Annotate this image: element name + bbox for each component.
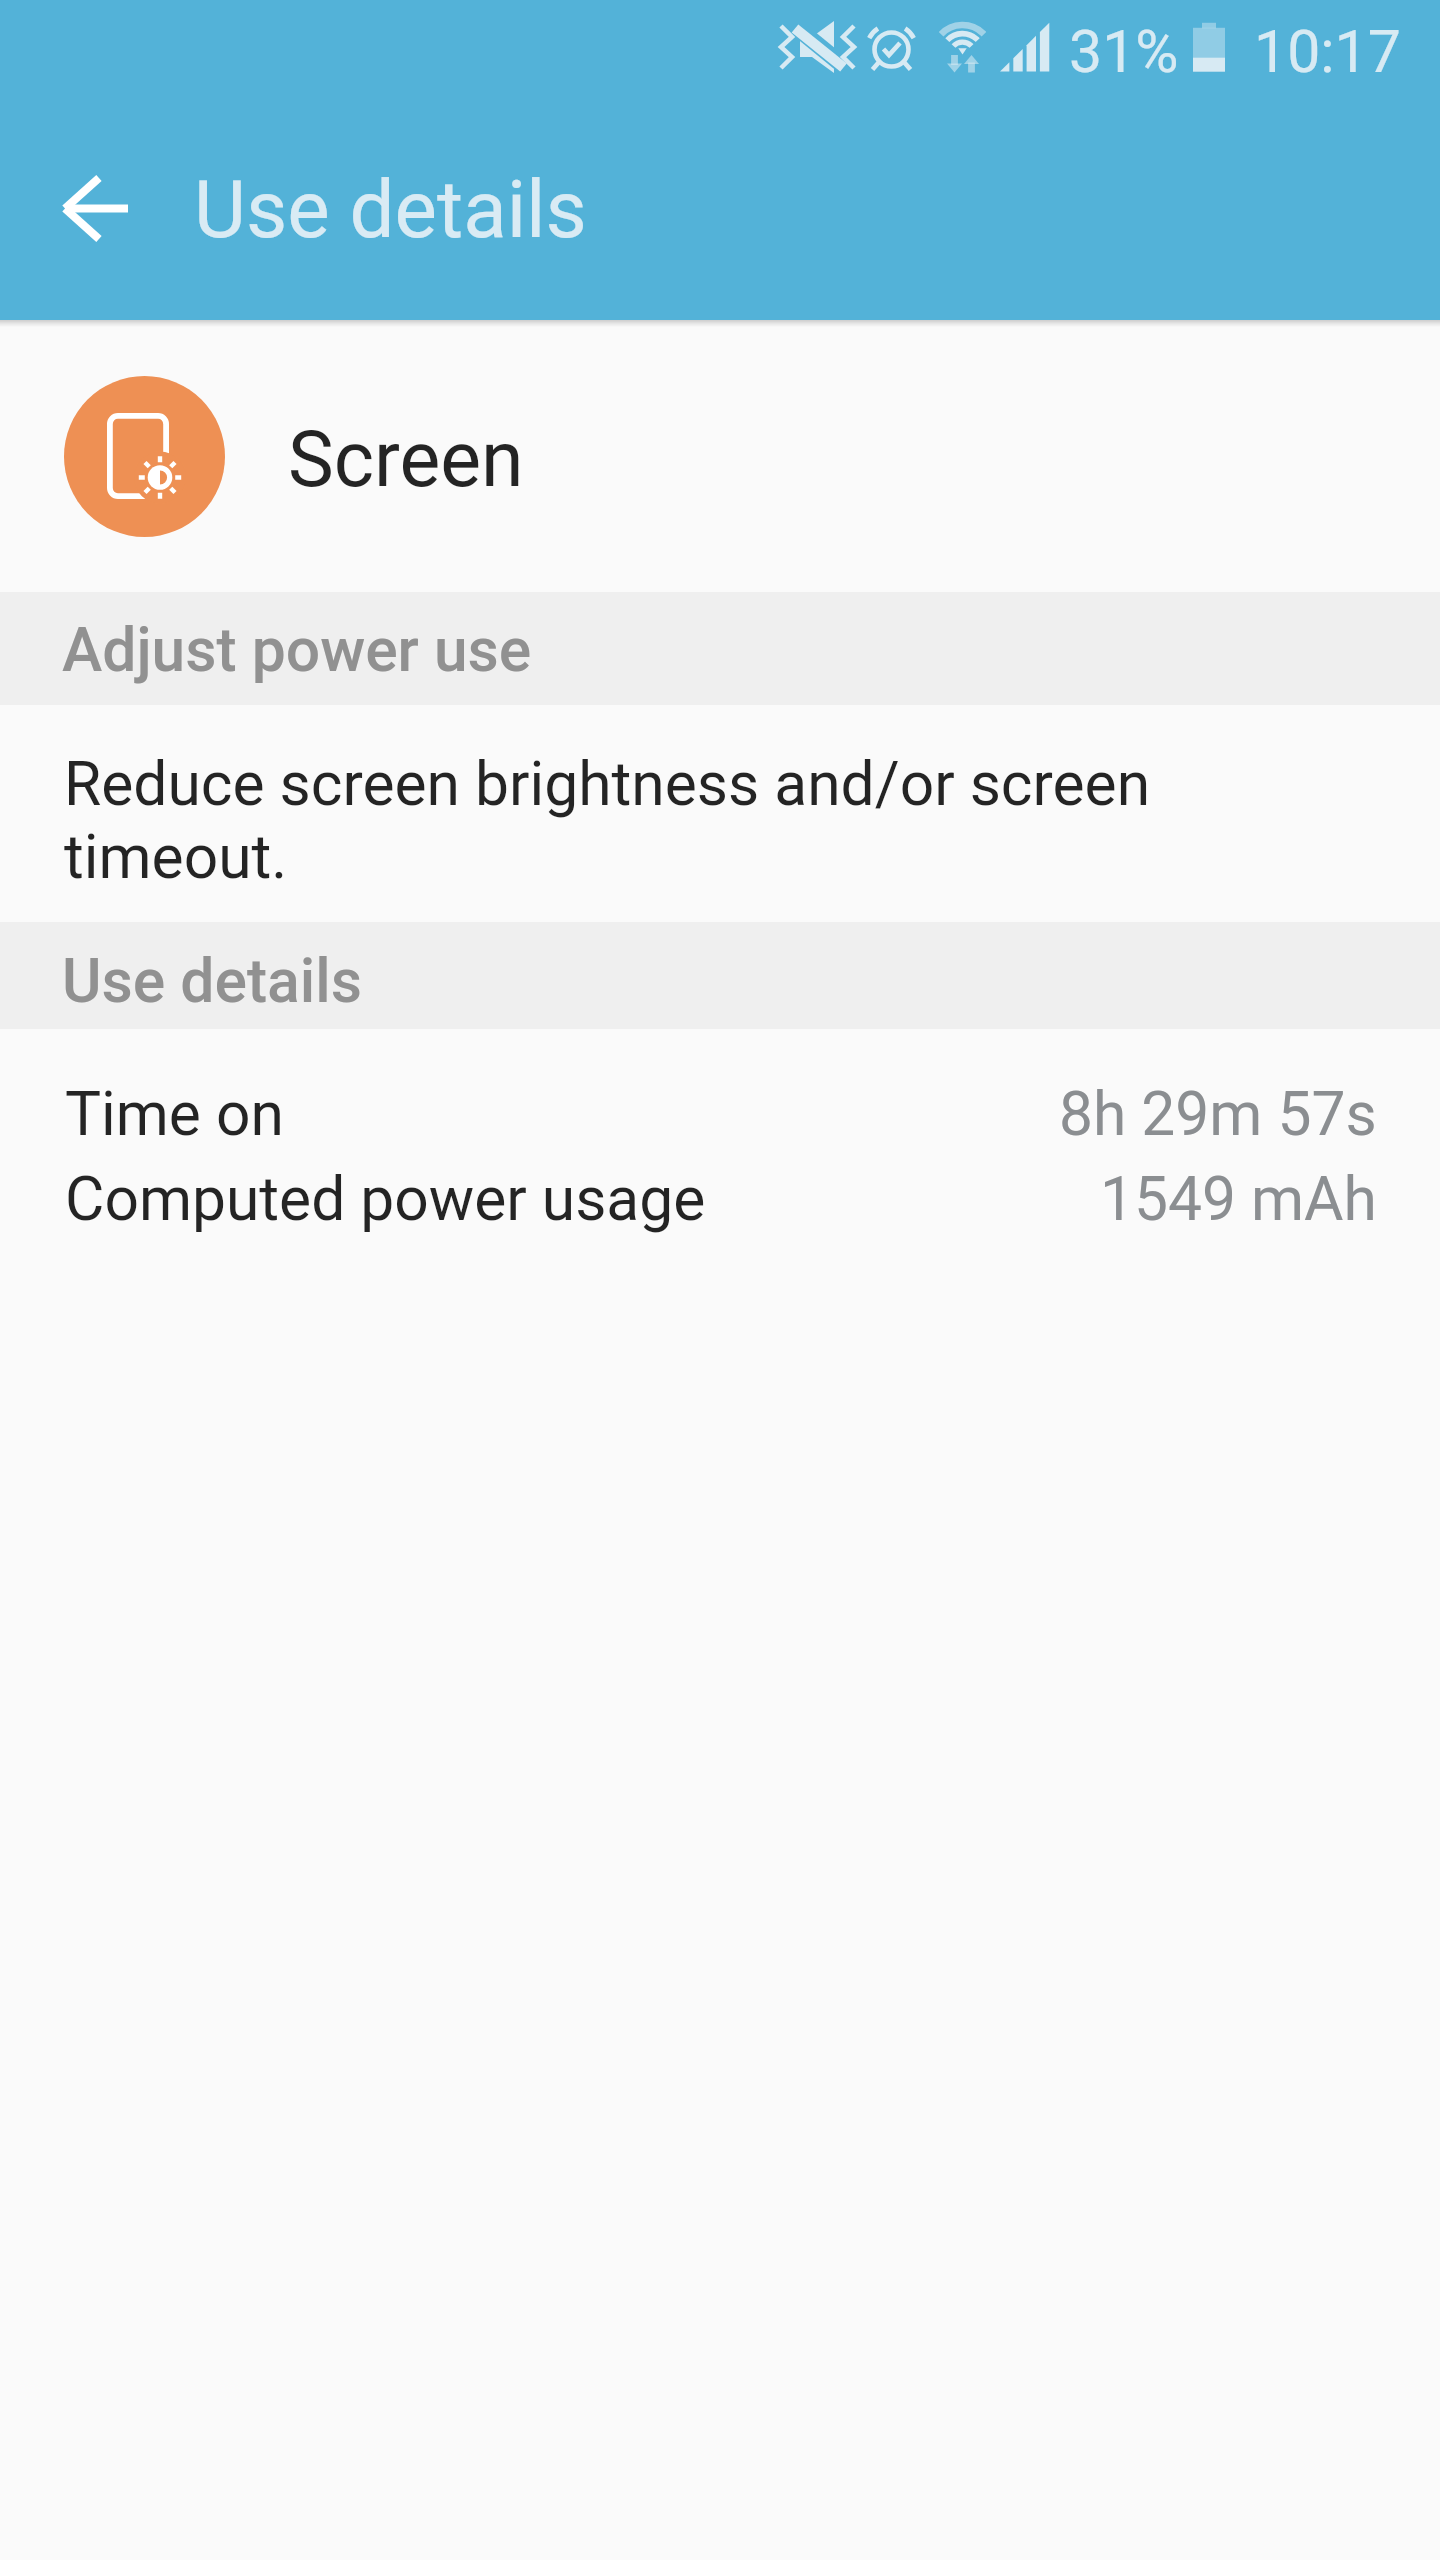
button[interactable]: Time on	[0, 1079, 1440, 1164]
button[interactable]: Computed power usage	[0, 1164, 1440, 1249]
staticText: Adjust power use	[62, 615, 532, 686]
staticText: Use details	[194, 163, 587, 257]
staticText: Computed power usage	[65, 1164, 706, 1235]
staticText: 1549 mAh	[1100, 1164, 1377, 1235]
staticText: 10:17	[1254, 17, 1401, 86]
button[interactable]: Navigate up	[0, 96, 192, 320]
staticText: Screen	[288, 415, 524, 505]
staticText: Reduce screen brightness and/or screen t…	[64, 749, 1174, 893]
staticText: Time on	[65, 1079, 284, 1150]
staticText: 31%	[1069, 17, 1179, 86]
staticText: Use details	[62, 946, 363, 1017]
staticText: 8h 29m 57s	[1059, 1079, 1377, 1150]
button[interactable]: Screen	[64, 376, 225, 537]
